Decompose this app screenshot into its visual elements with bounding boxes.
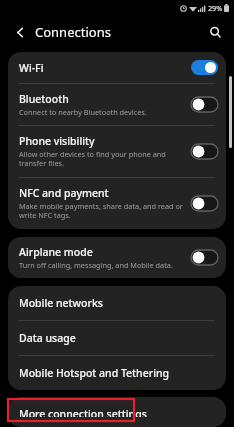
staticText: Connect to nearby Bluetooth devices. [19,107,147,117]
staticText: Mobile Hotspot and Tethering [19,366,170,380]
button[interactable]: Bluetooth [8,84,226,125]
staticText: Data usage [19,331,76,345]
staticText: More connection settings [19,407,147,417]
button[interactable]: Wi-Fi [8,52,226,83]
staticText: Airplane mode [19,245,93,259]
staticText: Allow other devices to find your phone a… [19,149,186,169]
button[interactable]: Mobile Hotspot and Tethering [8,356,226,390]
button[interactable]: Data usage [8,321,226,355]
button[interactable]: Airplane mode [8,237,226,278]
staticText: Turn off calling, messaging, and Mobile … [19,260,173,270]
staticText: 29% [208,3,223,13]
staticText: Wi-Fi [19,61,44,75]
button[interactable]: Back [11,23,29,41]
staticText: NFC and payment [19,186,109,200]
button[interactable]: Mobile networks [8,286,226,320]
staticText: Phone visibility [19,134,95,148]
button[interactable]: Search [205,22,225,42]
button[interactable]: Phone visibility [8,126,226,177]
staticText: Connections [35,23,111,41]
staticText: Mobile networks [19,296,103,310]
button[interactable]: More connection settings [8,397,226,427]
button[interactable]: NFC and payment [8,178,226,229]
staticText: Bluetooth [19,92,69,106]
staticText: Make mobile payments, share data, and re… [19,201,186,221]
